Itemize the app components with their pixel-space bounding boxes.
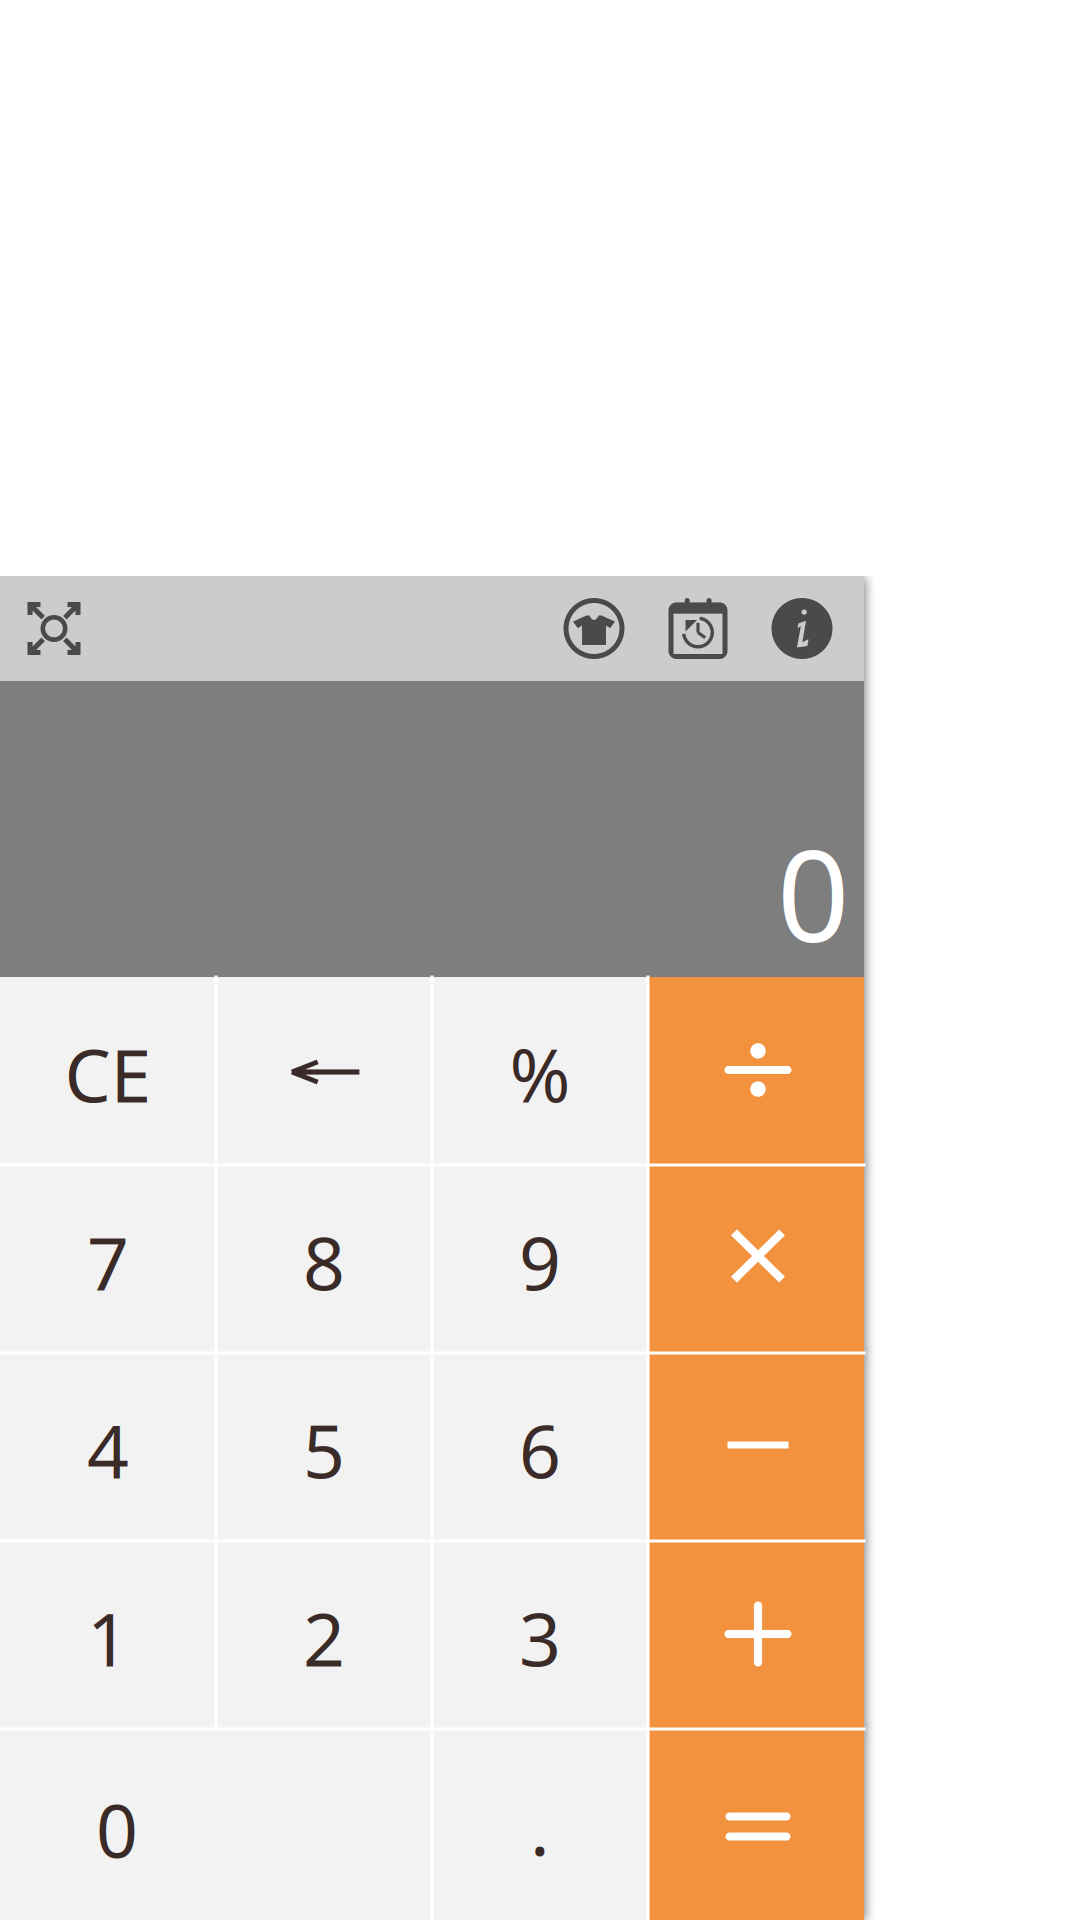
button[interactable]: Resize <box>0 576 108 681</box>
button[interactable]: 1 <box>0 1541 216 1729</box>
button[interactable]: 7 <box>0 1165 216 1353</box>
button[interactable]: Divide <box>648 977 864 1165</box>
button[interactable]: Add <box>648 1541 864 1729</box>
button[interactable]: Theme <box>532 576 656 681</box>
button[interactable]: 0 <box>0 1729 432 1920</box>
button[interactable]: Multiply <box>648 1165 864 1353</box>
button[interactable]: CE <box>0 977 216 1165</box>
staticText: 0 <box>96 1781 138 1878</box>
staticText: 8 <box>303 1213 345 1311</box>
button[interactable]: 6 <box>432 1353 648 1541</box>
button[interactable]: 8 <box>216 1165 432 1353</box>
staticText: 9 <box>519 1213 561 1311</box>
button[interactable]: Equals <box>648 1729 864 1920</box>
button[interactable]: Info <box>740 576 864 681</box>
staticText: CE <box>64 1025 151 1123</box>
button[interactable]: 3 <box>432 1541 648 1729</box>
staticText: 0 <box>777 809 849 977</box>
button[interactable]: 2 <box>216 1541 432 1729</box>
staticText: 2 <box>303 1589 345 1687</box>
button[interactable]: Backspace <box>216 977 432 1165</box>
button[interactable]: 5 <box>216 1353 432 1541</box>
staticText: 1 <box>87 1589 129 1687</box>
staticText: 3 <box>519 1589 561 1687</box>
staticText: 4 <box>87 1401 129 1499</box>
staticText: 5 <box>303 1401 345 1499</box>
staticText: 6 <box>519 1401 561 1499</box>
staticText: 7 <box>87 1213 129 1311</box>
button[interactable]: Subtract <box>648 1353 864 1541</box>
staticText: % <box>509 1025 570 1123</box>
button[interactable]: History <box>656 576 740 681</box>
button[interactable]: 9 <box>432 1165 648 1353</box>
staticText: . <box>530 1779 550 1876</box>
button[interactable]: % <box>432 977 648 1165</box>
button[interactable]: 4 <box>0 1353 216 1541</box>
button[interactable]: . <box>432 1729 648 1920</box>
